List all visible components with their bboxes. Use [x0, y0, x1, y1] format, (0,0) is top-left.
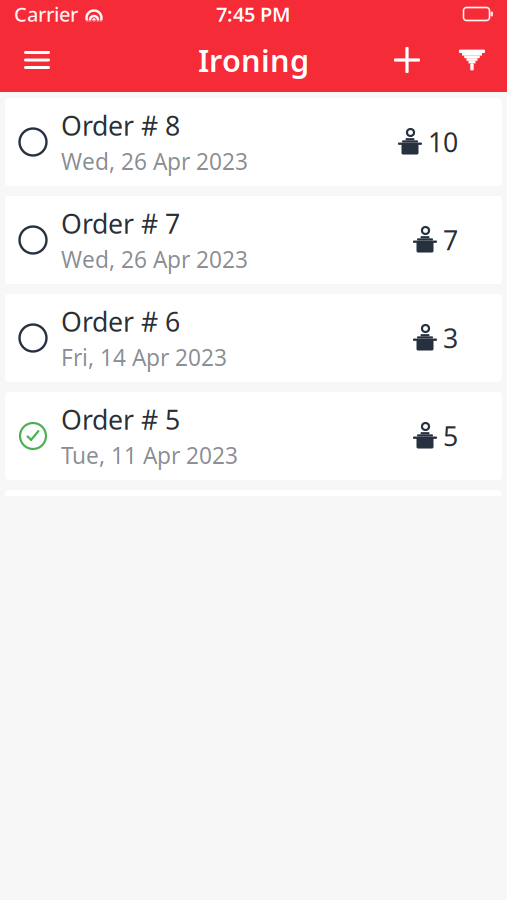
button[interactable]: Add order [383, 40, 431, 80]
button[interactable]: Filter [449, 41, 495, 79]
staticText: 7 [443, 222, 458, 258]
staticText: 5 [443, 418, 458, 454]
staticText: 7:45 PM [216, 1, 291, 27]
button[interactable]: Order # 8 [5, 98, 502, 186]
staticText: Wed, 26 Apr 2023 [61, 244, 248, 274]
staticText: Wed, 26 Apr 2023 [61, 146, 248, 176]
button[interactable]: Order # 5 [5, 392, 502, 480]
staticText: 10 [428, 124, 458, 160]
staticText: Carrier [14, 1, 78, 27]
staticText: Order # 8 [61, 108, 180, 143]
staticText: Tue, 11 Apr 2023 [61, 440, 238, 470]
staticText: Order # 6 [61, 304, 180, 339]
button[interactable]: Order # 7 [5, 196, 502, 284]
button[interactable]: Menu [12, 39, 62, 81]
staticText: 3 [443, 320, 458, 356]
staticText: Ironing [198, 40, 309, 80]
staticText: Order # 7 [61, 206, 180, 241]
staticText: Order # 5 [61, 402, 180, 437]
staticText: Fri, 14 Apr 2023 [61, 342, 227, 372]
button[interactable]: Order # 6 [5, 294, 502, 382]
